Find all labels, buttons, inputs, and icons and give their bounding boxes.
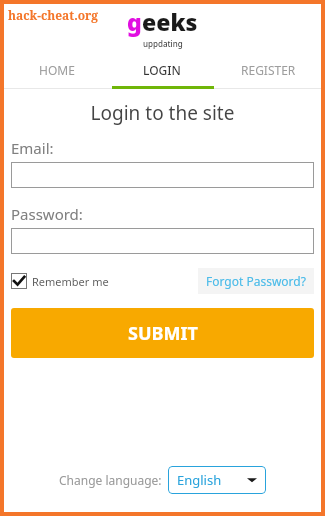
- button[interactable]: REGISTER: [215, 54, 321, 86]
- staticText: uppdating: [143, 38, 183, 49]
- staticText: Remember me: [32, 274, 109, 289]
- staticText: hack-cheat.org: [8, 7, 99, 23]
- staticText: Login to the site: [4, 100, 321, 126]
- button[interactable]: [11, 162, 314, 188]
- button[interactable]: HOME: [4, 54, 109, 86]
- button[interactable]: [11, 228, 314, 254]
- staticText: g: [127, 6, 142, 37]
- staticText: Password:: [11, 204, 321, 224]
- staticText: Change language:: [59, 472, 162, 488]
- button[interactable]: Remember me: [11, 273, 109, 289]
- staticText: HOME: [39, 62, 75, 78]
- staticText: SUBMIT: [128, 321, 198, 346]
- staticText: Forgot Password?: [206, 273, 306, 289]
- staticText: LOGIN: [143, 62, 181, 78]
- staticText: eeks: [142, 6, 198, 37]
- button[interactable]: Forgot Password?: [198, 268, 314, 294]
- button[interactable]: LOGIN: [109, 54, 215, 86]
- staticText: REGISTER: [241, 62, 296, 78]
- button[interactable]: SUBMIT: [11, 308, 314, 358]
- staticText: Email:: [11, 138, 321, 158]
- button[interactable]: English: [168, 466, 266, 494]
- staticText: English: [177, 471, 222, 489]
